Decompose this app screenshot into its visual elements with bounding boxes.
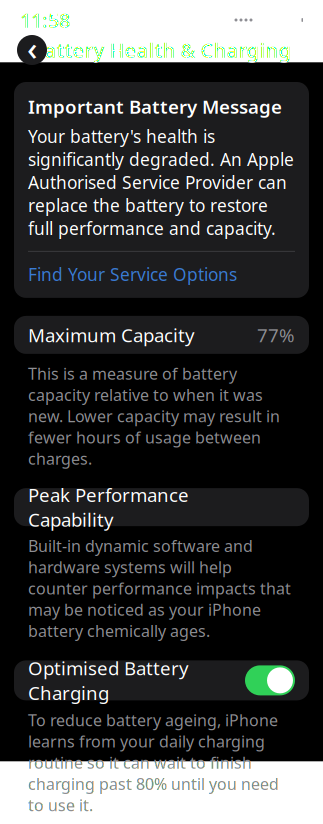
staticText: Find Your Service Options	[28, 263, 237, 286]
staticText: Battery Health & Charging	[31, 37, 291, 63]
staticText: To reduce battery ageing, iPhone learns …	[28, 709, 279, 816]
staticText: Important Battery Message	[28, 94, 282, 119]
button[interactable]: Back	[17, 27, 47, 73]
button[interactable]: Find Your Service Options	[28, 263, 295, 286]
staticText: 77%	[257, 322, 295, 347]
staticText: Your battery's health is significantly d…	[28, 125, 294, 240]
staticText: Optimised Battery Charging	[28, 656, 189, 705]
button[interactable]: Optimised Battery Charging toggle	[245, 665, 295, 695]
staticText: ‹	[27, 27, 37, 69]
staticText: Peak Performance Capability	[28, 482, 189, 532]
staticText: This is a measure of battery capacity re…	[28, 363, 280, 469]
staticText: Maximum Capacity	[28, 322, 195, 347]
staticText: 11:58	[20, 7, 70, 33]
staticText: Built-in dynamic software and hardware s…	[28, 535, 291, 641]
